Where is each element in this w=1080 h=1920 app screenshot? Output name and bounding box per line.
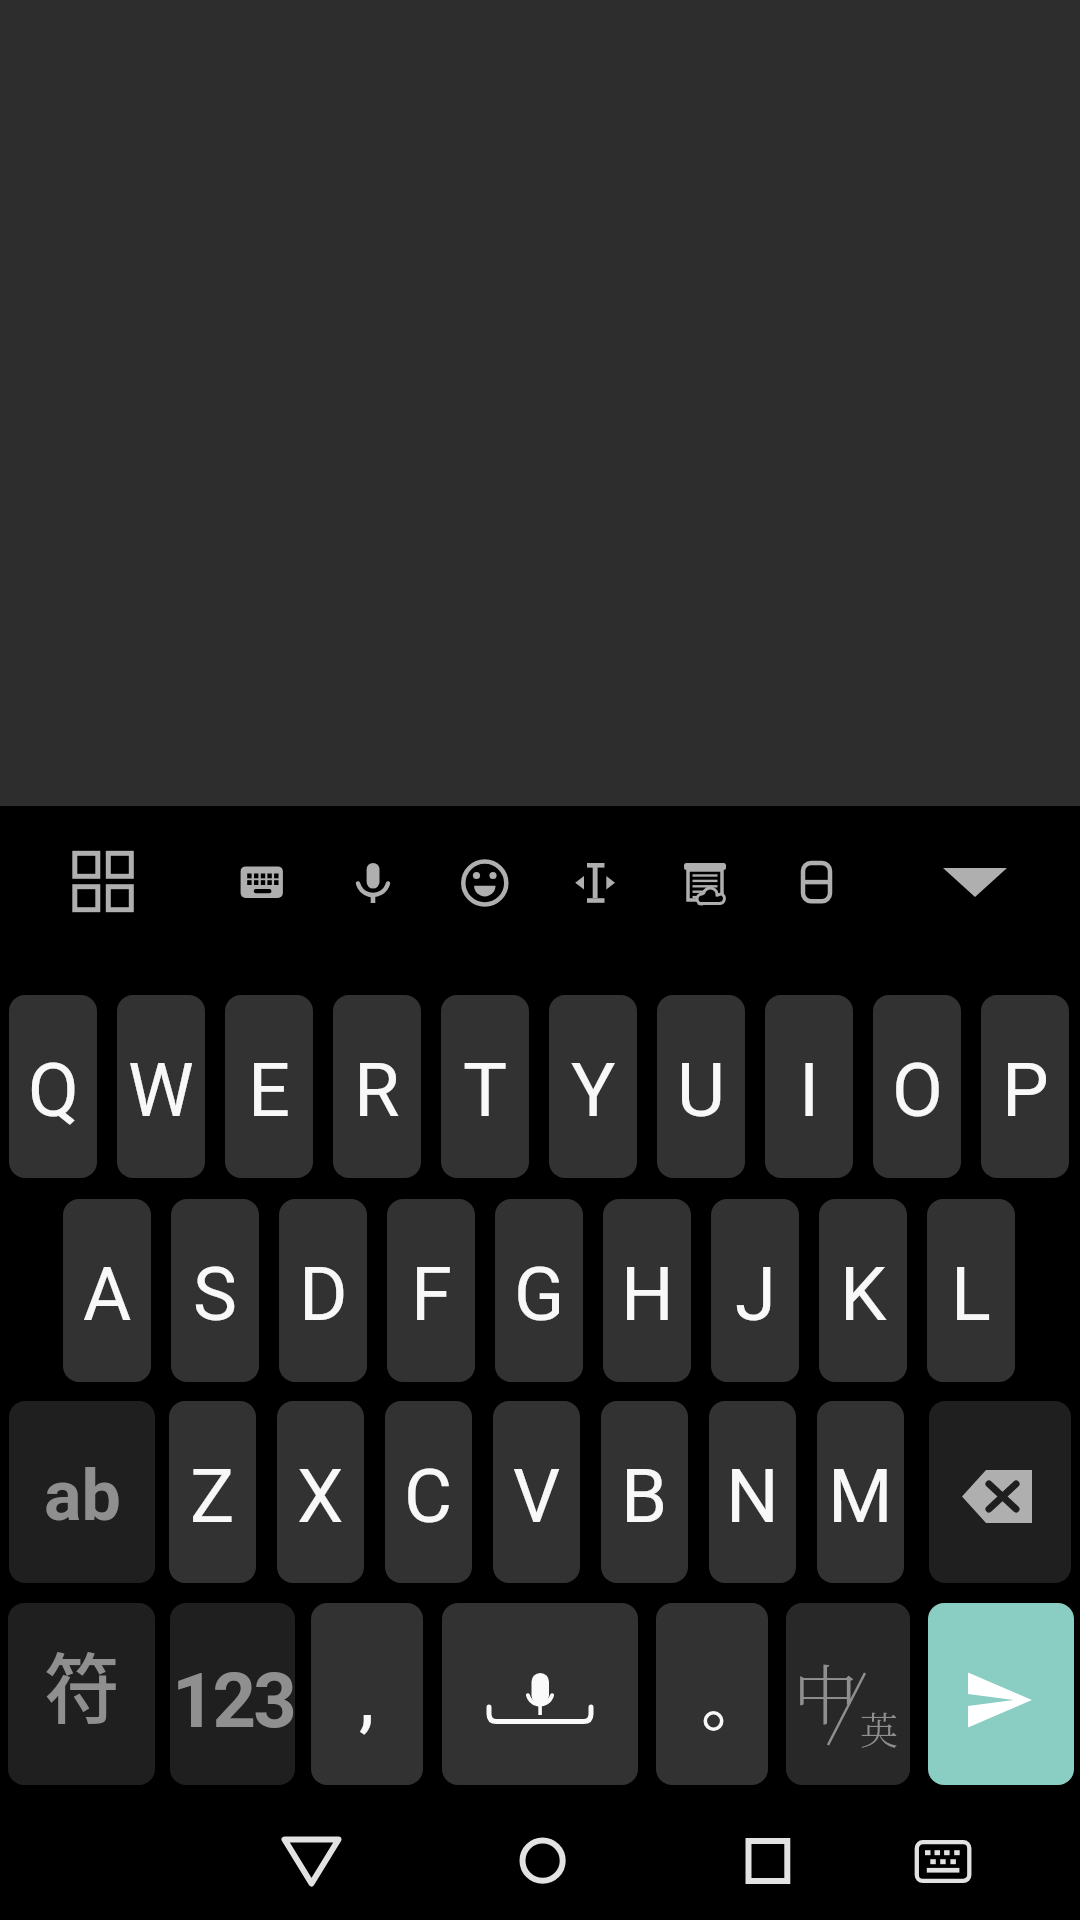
staticText: O (892, 1047, 943, 1134)
staticText: 123 (172, 1656, 294, 1745)
button[interactable]: ab (9, 1401, 155, 1583)
staticText: U (677, 1047, 725, 1134)
staticText: E (248, 1047, 291, 1134)
staticText: ab (44, 1455, 121, 1537)
button[interactable] (712, 1806, 822, 1916)
staticText: K (840, 1251, 887, 1338)
button[interactable]: T (441, 995, 529, 1178)
staticText: 符 (44, 1629, 120, 1739)
button[interactable] (212, 832, 312, 932)
button[interactable]: Q (9, 995, 97, 1178)
button[interactable] (925, 832, 1025, 932)
staticText: G (514, 1251, 565, 1338)
staticText: N (726, 1453, 779, 1540)
button[interactable]: F (387, 1199, 475, 1382)
staticText: W (128, 1047, 194, 1134)
button[interactable]: , (311, 1603, 423, 1785)
button[interactable] (928, 1603, 1074, 1785)
staticText: T (463, 1047, 508, 1134)
staticText: L (951, 1251, 991, 1338)
button[interactable]: 中 (786, 1603, 910, 1785)
button[interactable]: P (981, 995, 1069, 1178)
button[interactable] (655, 832, 755, 932)
button[interactable]: Z (169, 1401, 256, 1583)
button[interactable]: B (601, 1401, 688, 1583)
button[interactable]: M (817, 1401, 904, 1583)
button[interactable] (656, 1603, 768, 1785)
staticText: J (735, 1251, 776, 1338)
staticText: M (828, 1453, 893, 1540)
button[interactable]: I (765, 995, 853, 1178)
staticText: P (1002, 1047, 1049, 1134)
staticText: X (297, 1453, 344, 1540)
button[interactable]: R (333, 995, 421, 1178)
button[interactable] (442, 1603, 638, 1785)
button[interactable]: N (709, 1401, 796, 1583)
staticText: B (621, 1453, 668, 1540)
staticText: I (799, 1047, 820, 1134)
button[interactable]: Y (549, 995, 637, 1178)
button[interactable]: H (603, 1199, 691, 1382)
button[interactable]: J (711, 1199, 799, 1382)
staticText: F (411, 1251, 452, 1338)
button[interactable]: G (495, 1199, 583, 1382)
button[interactable]: D (279, 1199, 367, 1382)
button[interactable]: S (171, 1199, 259, 1382)
staticText: 英 (860, 1700, 899, 1755)
staticText: Q (28, 1047, 79, 1134)
staticText: C (404, 1453, 453, 1540)
staticText: Z (190, 1453, 235, 1540)
button[interactable]: V (493, 1401, 580, 1583)
button[interactable]: 123 (170, 1603, 295, 1785)
staticText: 中 (793, 1644, 859, 1737)
button[interactable] (545, 832, 645, 932)
staticText: D (299, 1251, 348, 1338)
button[interactable] (323, 832, 423, 932)
button[interactable] (487, 1806, 597, 1916)
button[interactable]: C (385, 1401, 472, 1583)
button[interactable]: O (873, 995, 961, 1178)
button[interactable]: X (277, 1401, 364, 1583)
staticText: A (83, 1251, 132, 1338)
button[interactable] (435, 832, 535, 932)
button[interactable]: L (927, 1199, 1015, 1382)
staticText: Y (571, 1047, 616, 1134)
button[interactable] (766, 832, 866, 932)
button[interactable]: A (63, 1199, 151, 1382)
button[interactable]: W (117, 995, 205, 1178)
staticText: , (359, 1651, 375, 1742)
staticText: S (193, 1251, 237, 1338)
button[interactable]: U (657, 995, 745, 1178)
staticText: H (621, 1251, 674, 1338)
button[interactable] (256, 1806, 366, 1916)
staticText: R (354, 1047, 400, 1134)
staticText: V (513, 1453, 561, 1540)
button[interactable]: K (819, 1199, 907, 1382)
button[interactable]: 符 (8, 1603, 155, 1785)
button[interactable] (53, 832, 153, 932)
button[interactable] (887, 1806, 997, 1916)
button[interactable]: E (225, 995, 313, 1178)
button[interactable] (929, 1401, 1071, 1583)
